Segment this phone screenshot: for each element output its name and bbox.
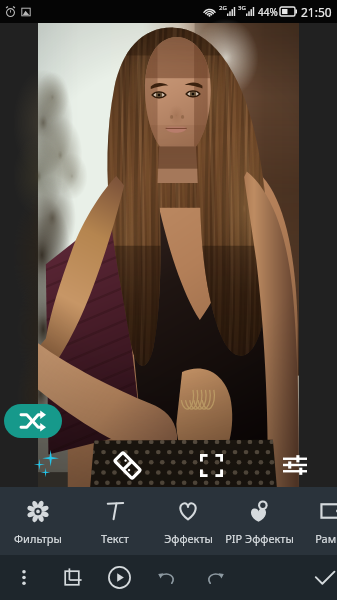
button[interactable]: More options bbox=[0, 555, 48, 600]
staticText: Эффекты bbox=[164, 531, 213, 546]
staticText: Текст bbox=[101, 531, 129, 546]
button[interactable]: Magic enhance bbox=[31, 452, 59, 480]
button[interactable]: Shuffle bbox=[4, 404, 62, 438]
staticText: 2G bbox=[219, 4, 227, 12]
button[interactable]: Текст bbox=[79, 487, 151, 555]
staticText: Рамки bbox=[315, 531, 337, 546]
staticText: 21:50 bbox=[301, 4, 332, 20]
button[interactable]: PIP Эффекты bbox=[223, 487, 295, 555]
staticText: Фильтры bbox=[14, 531, 62, 546]
button[interactable]: Adjust bbox=[281, 451, 309, 479]
staticText: 44% bbox=[258, 5, 278, 19]
button[interactable]: Эффекты bbox=[152, 487, 224, 555]
button[interactable]: Фильтры bbox=[2, 487, 74, 555]
button[interactable]: Crop bbox=[48, 555, 95, 600]
button[interactable]: Done bbox=[313, 555, 337, 600]
button[interactable]: Crop bbox=[197, 451, 225, 479]
button[interactable]: Рамки bbox=[296, 487, 337, 555]
staticText: PIP Эффекты bbox=[225, 531, 294, 546]
button[interactable]: Heal bbox=[112, 450, 142, 480]
button[interactable]: Redo bbox=[190, 555, 239, 600]
staticText: 3G bbox=[238, 4, 246, 12]
button[interactable]: Undo bbox=[143, 555, 190, 600]
button[interactable]: Play bbox=[95, 555, 143, 600]
